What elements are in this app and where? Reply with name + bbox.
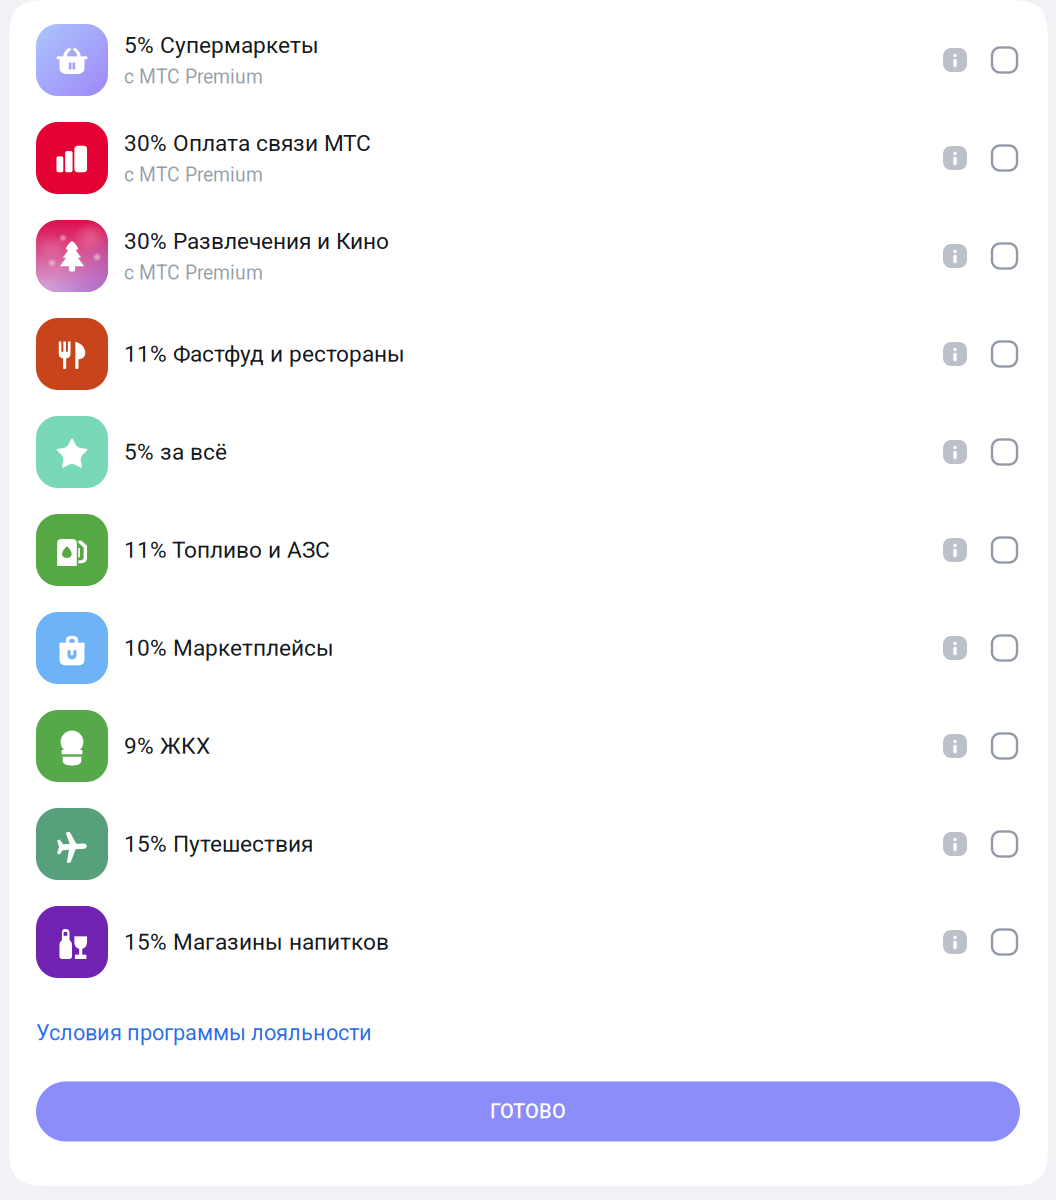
button[interactable]: Выбрать категорию	[992, 929, 1017, 954]
staticText: 15% Путешествия	[124, 831, 313, 857]
staticText: с МТС Premium	[124, 261, 263, 284]
staticText: Условия программы лояльности	[36, 1020, 372, 1045]
button[interactable]: 5% за всё	[9, 403, 1048, 501]
button[interactable]: Выбрать категорию	[992, 145, 1017, 170]
button[interactable]: Подробнее	[943, 734, 967, 758]
button[interactable]: Подробнее	[943, 930, 967, 954]
button[interactable]: Подробнее	[943, 636, 967, 660]
staticText: 11% Топливо и АЗС	[124, 537, 330, 563]
staticText: ГОТОВО	[490, 1100, 566, 1123]
button[interactable]: Выбрать категорию	[992, 635, 1017, 660]
button[interactable]: Выбрать категорию	[992, 47, 1017, 72]
button[interactable]: Подробнее	[943, 832, 967, 856]
button[interactable]: Выбрать категорию	[992, 439, 1017, 464]
button[interactable]: Выбрать категорию	[992, 341, 1017, 366]
button[interactable]: Подробнее	[943, 440, 967, 464]
staticText: 5% за всё	[124, 439, 227, 465]
button[interactable]: 10% Маркетплейсы	[9, 599, 1048, 697]
button[interactable]: Условия программы лояльности	[36, 1020, 372, 1045]
button[interactable]: Подробнее	[943, 538, 967, 562]
button[interactable]: 11% Топливо и АЗС	[9, 501, 1048, 599]
button[interactable]: Подробнее	[943, 244, 967, 268]
button[interactable]: 9% ЖКХ	[9, 697, 1048, 795]
staticText: 5% Супермаркеты	[124, 32, 319, 58]
staticText: с МТС Premium	[124, 163, 263, 186]
button[interactable]: ГОТОВО	[36, 1081, 1020, 1141]
staticText: 10% Маркетплейсы	[124, 635, 334, 661]
staticText: 30% Развлечения и Кино	[124, 228, 389, 254]
staticText: 9% ЖКХ	[124, 733, 210, 759]
button[interactable]: Подробнее	[943, 342, 967, 366]
button[interactable]: 30% Оплата связи МТС	[9, 109, 1048, 207]
button[interactable]: Выбрать категорию	[992, 831, 1017, 856]
button[interactable]: 15% Путешествия	[9, 795, 1048, 893]
button[interactable]: 5% Супермаркеты	[9, 11, 1048, 109]
button[interactable]: Выбрать категорию	[992, 733, 1017, 758]
button[interactable]: Подробнее	[943, 48, 967, 72]
staticText: 15% Магазины напитков	[124, 929, 389, 955]
button[interactable]: 30% Развлечения и Кино	[9, 207, 1048, 305]
staticText: 11% Фастфуд и рестораны	[124, 341, 405, 367]
button[interactable]: Выбрать категорию	[992, 537, 1017, 562]
button[interactable]: 15% Магазины напитков	[9, 893, 1048, 991]
staticText: 30% Оплата связи МТС	[124, 130, 371, 156]
button[interactable]: 11% Фастфуд и рестораны	[9, 305, 1048, 403]
button[interactable]: Выбрать категорию	[992, 243, 1017, 268]
button[interactable]: Подробнее	[943, 146, 967, 170]
staticText: с МТС Premium	[124, 65, 263, 88]
